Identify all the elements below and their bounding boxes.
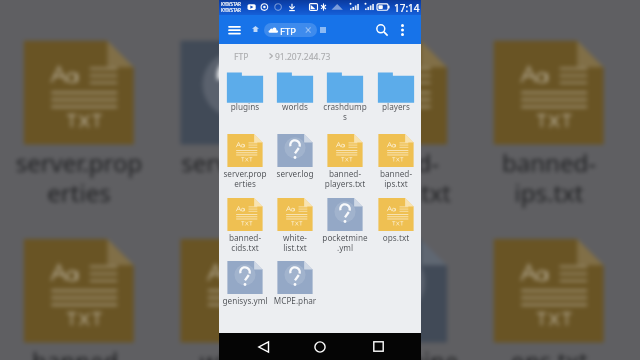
staticText: crashdumps: [322, 101, 368, 122]
staticText: server.log: [272, 168, 318, 179]
staticText: banned-ips.txt: [482, 146, 616, 209]
button[interactable]: server.log: [270, 130, 320, 194]
button[interactable]: white-list.txt: [270, 194, 320, 258]
staticText: server.properties: [222, 168, 268, 189]
button[interactable]: banned-cids.txt: [220, 194, 270, 258]
button[interactable]: More options: [393, 20, 411, 40]
staticText: FTP: [280, 25, 296, 37]
button[interactable]: FTP: [264, 23, 317, 37]
staticText: banned-players.txt: [325, 146, 459, 209]
staticText: server.log: [181, 146, 290, 179]
button[interactable]: Search: [371, 19, 393, 41]
button[interactable]: MCPE.phar: [270, 257, 320, 321]
staticText: banned-ips.txt: [373, 168, 419, 189]
button[interactable]: Back: [249, 333, 277, 360]
button[interactable]: banned-players.txt: [320, 130, 370, 194]
staticText: ops.txt: [373, 232, 419, 243]
button[interactable]: players: [371, 63, 421, 127]
staticText: banned-players.txt: [322, 168, 368, 189]
staticText: KYIVSTAR: [221, 1, 241, 7]
staticText: white-list.txt: [272, 232, 318, 253]
staticText: genisys.yml: [222, 295, 268, 306]
staticText: FTP: [234, 51, 249, 63]
button[interactable]: plugins: [220, 63, 270, 127]
staticText: 17:14: [394, 1, 420, 15]
staticText: banned-cids.txt: [12, 344, 146, 360]
button[interactable]: banned-ips.txt: [371, 130, 421, 194]
button[interactable]: pocketmine.yml: [320, 194, 370, 258]
staticText: server.properties: [12, 146, 146, 209]
button[interactable]: Recent apps: [364, 333, 392, 360]
staticText: pocketmine.yml: [325, 344, 459, 360]
staticText: banned-cids.txt: [222, 232, 268, 253]
button[interactable]: server.properties: [220, 130, 270, 194]
button[interactable]: Open navigation menu: [223, 20, 245, 40]
staticText: white-list.txt: [168, 344, 302, 360]
button[interactable]: genisys.yml: [220, 257, 270, 321]
staticText: KYIVSTAR: [221, 7, 241, 13]
button[interactable]: crashdumps: [320, 63, 370, 127]
staticText: ops.txt: [510, 344, 588, 360]
staticText: players: [373, 101, 419, 112]
staticText: worlds: [272, 101, 318, 112]
button[interactable]: ops.txt: [371, 194, 421, 258]
button[interactable]: Home: [306, 333, 334, 360]
button[interactable]: worlds: [270, 63, 320, 127]
staticText: MCPE.phar: [272, 295, 318, 306]
staticText: 91.207.244.73: [275, 51, 331, 63]
staticText: plugins: [222, 101, 268, 112]
staticText: pocketmine.yml: [322, 232, 368, 253]
button[interactable]: Home: [247, 21, 263, 37]
